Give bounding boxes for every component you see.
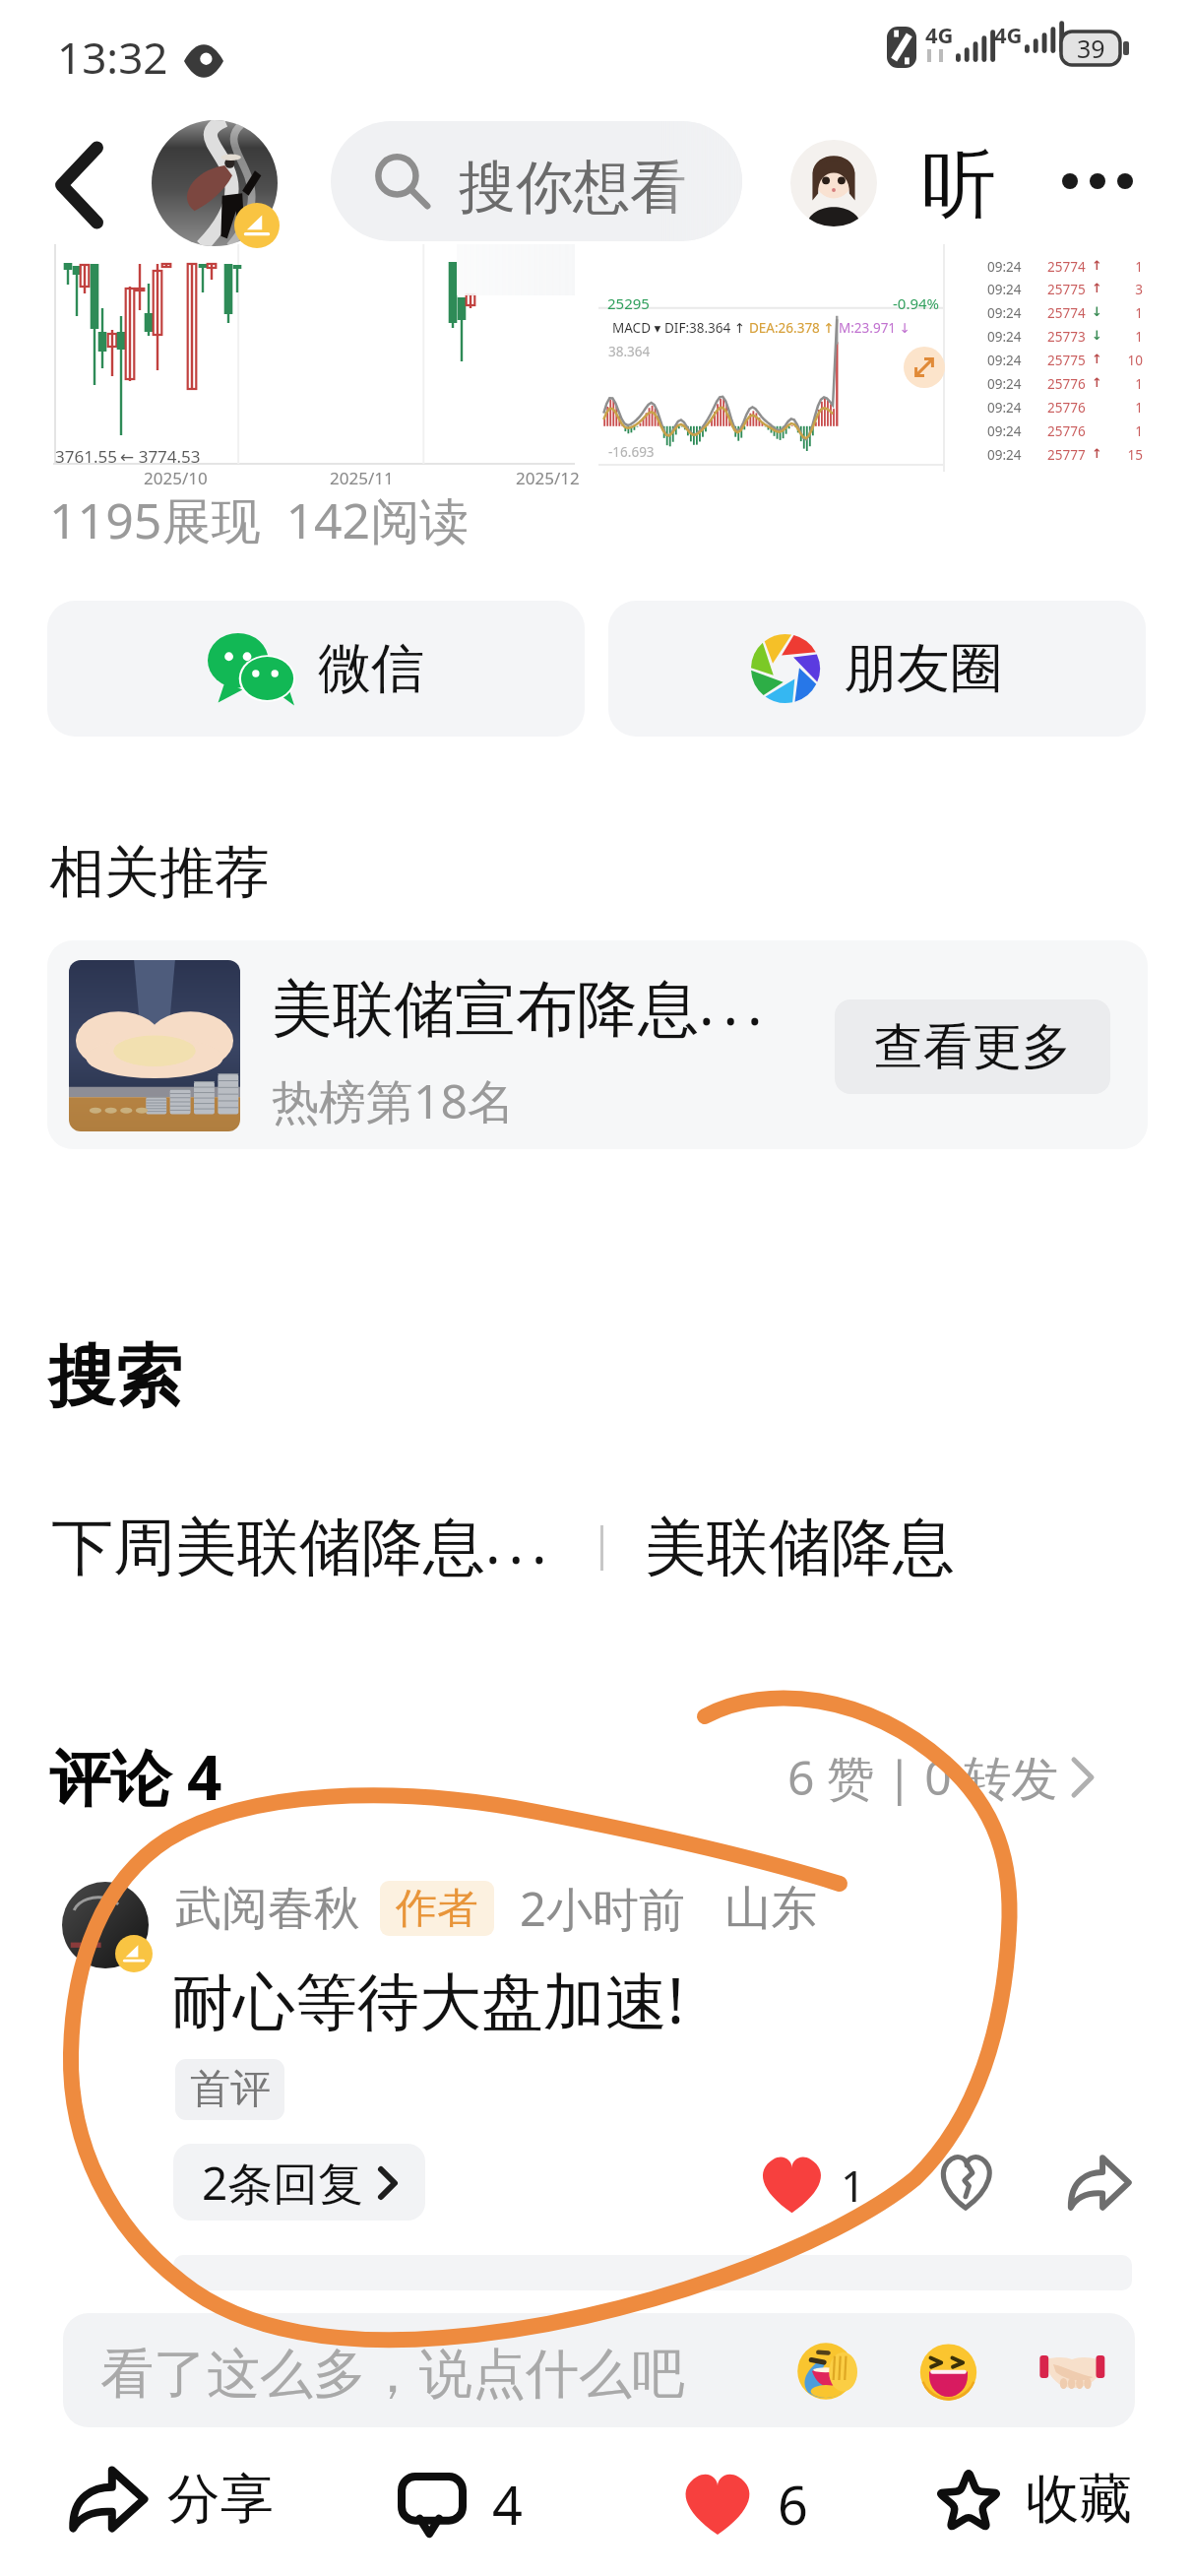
- staticText: 武阅春秋: [175, 1880, 360, 1938]
- staticText: 搜索: [48, 1335, 182, 1420]
- staticText: 相关推荐: [49, 838, 270, 908]
- staticText: 首评: [190, 2064, 271, 2115]
- button[interactable]: Share comment: [1069, 2156, 1130, 2210]
- staticText: 09:24: [987, 281, 1022, 298]
- staticText: 3761.55: [55, 445, 117, 468]
- button[interactable]: 看了这么多，说点什么吧: [63, 2313, 1135, 2427]
- staticText: 热榜第18名: [272, 1068, 515, 1133]
- staticText: ↑: [1092, 258, 1102, 273]
- staticText: 耐心等待大盘加速!: [171, 1958, 684, 2042]
- button[interactable]: 微信: [47, 601, 585, 737]
- staticText: 1: [1113, 258, 1143, 276]
- staticText: 1: [1113, 422, 1143, 440]
- staticText: 4G: [925, 20, 954, 49]
- staticText: 2025/11: [330, 467, 394, 489]
- button[interactable]: 搜你想看: [331, 121, 742, 241]
- staticText: 09:24: [987, 304, 1022, 322]
- button[interactable]: 美联储降息: [645, 1509, 955, 1586]
- staticText: MACD ▾: [612, 319, 664, 337]
- button[interactable]: 朋友圈: [608, 601, 1146, 737]
- staticText: 38.364: [608, 343, 651, 360]
- staticText: DIF:38.364 ↑: [664, 319, 749, 337]
- staticText: 1: [1113, 375, 1143, 393]
- staticText: 查看更多: [874, 1016, 1071, 1078]
- staticText: 下周美联储降息: [51, 1509, 485, 1586]
- staticText: 收藏: [1026, 2466, 1132, 2533]
- staticText: ↑: [1092, 281, 1102, 295]
- staticText: 25774: [1047, 304, 1086, 322]
- staticText: 25776: [1047, 375, 1086, 393]
- button[interactable]: 下周美联储降息: [51, 1509, 555, 1586]
- button[interactable]: Emoji laugh cry: [794, 2340, 857, 2403]
- button[interactable]: 6 赞 | 0 转发: [787, 1745, 1095, 1810]
- button[interactable]: 2条回复: [173, 2144, 425, 2221]
- staticText: 搜你想看: [459, 152, 687, 224]
- button[interactable]: 分享: [71, 2466, 274, 2533]
- staticText: 美联储宣布降息: [272, 971, 699, 1048]
- staticText: ↑: [1092, 352, 1102, 366]
- staticText: 6 赞 | 0 转发: [787, 1745, 1059, 1810]
- staticText: 25774: [1047, 258, 1086, 276]
- button[interactable]: 查看更多: [835, 999, 1110, 1094]
- staticText: 09:24: [987, 258, 1022, 276]
- button[interactable]: Back: [45, 138, 114, 232]
- staticText: 2小时前: [520, 1877, 685, 1940]
- staticText: 13:32: [57, 28, 168, 87]
- staticText: 39: [1077, 32, 1105, 65]
- button[interactable]: Like comment: [757, 2155, 866, 2215]
- button[interactable]: Author avatar: [152, 120, 282, 250]
- staticText: 分享: [167, 2466, 274, 2533]
- staticText: ...: [699, 964, 772, 1042]
- button[interactable]: 收藏: [933, 2466, 1132, 2533]
- button[interactable]: Profile: [790, 140, 877, 226]
- staticText: 评论 4: [49, 1735, 222, 1819]
- staticText: 25776: [1047, 399, 1086, 417]
- staticText: 1195展现 142阅读: [49, 486, 470, 553]
- staticText: 微信: [318, 635, 424, 702]
- staticText: 09:24: [987, 352, 1022, 369]
- staticText: 作者: [396, 1883, 478, 1935]
- staticText: ↑: [1092, 446, 1102, 461]
- staticText: -16.693: [608, 443, 655, 461]
- staticText: 10: [1113, 352, 1143, 369]
- staticText: 1: [1113, 304, 1143, 322]
- staticText: 3: [1113, 281, 1143, 298]
- button[interactable]: More options: [1045, 148, 1150, 215]
- button[interactable]: Emoji grin: [918, 2342, 978, 2402]
- staticText: ↓: [1092, 328, 1102, 343]
- staticText: 4: [492, 2468, 523, 2541]
- staticText: 朋友圈: [844, 635, 1003, 702]
- button[interactable]: Commenter avatar: [62, 1882, 153, 1972]
- staticText: 1: [841, 2156, 866, 2215]
- button[interactable]: 美联储宣布降息: [47, 940, 1148, 1149]
- staticText: 2条回复: [202, 2152, 364, 2214]
- staticText: 25776: [1047, 422, 1086, 440]
- staticText: 6: [778, 2468, 808, 2541]
- staticText: 15: [1113, 446, 1143, 464]
- button[interactable]: Dislike comment: [937, 2156, 994, 2210]
- staticText: 25775: [1047, 281, 1086, 298]
- staticText: 1: [1113, 399, 1143, 417]
- staticText: 山东: [724, 1880, 817, 1938]
- button[interactable]: Emoji handshake: [1038, 2345, 1105, 2394]
- staticText: 25777: [1047, 446, 1086, 464]
- staticText: 09:24: [987, 446, 1022, 464]
- staticText: M:23.971 ↓: [839, 319, 910, 337]
- staticText: ↑: [1092, 375, 1102, 390]
- staticText: ...: [485, 1503, 555, 1580]
- staticText: 4G: [994, 20, 1023, 49]
- button[interactable]: 听: [921, 138, 996, 232]
- button[interactable]: 6: [679, 2468, 808, 2541]
- staticText: 2025/12: [516, 467, 580, 489]
- staticText: ↓: [1092, 304, 1102, 319]
- staticText: -0.94%: [893, 293, 940, 313]
- staticText: 09:24: [987, 422, 1022, 440]
- staticText: 25295: [607, 293, 650, 313]
- staticText: 1: [1113, 328, 1143, 346]
- staticText: 09:24: [987, 399, 1022, 417]
- staticText: 09:24: [987, 375, 1022, 393]
- staticText: 25775: [1047, 352, 1086, 369]
- staticText: 看了这么多，说点什么吧: [100, 2341, 685, 2408]
- staticText: DEA:26.378 ↑: [749, 319, 839, 337]
- button[interactable]: 4: [398, 2468, 523, 2541]
